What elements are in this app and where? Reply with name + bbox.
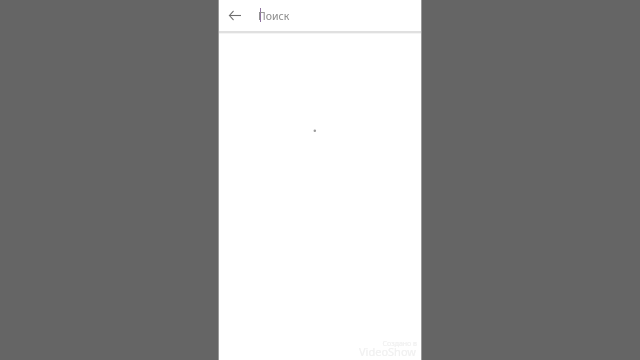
staticText: Поиск <box>258 9 290 23</box>
staticText: Создано в <box>348 339 417 349</box>
staticText: VideoShow <box>338 344 416 359</box>
button[interactable]: Поиск <box>249 0 421 31</box>
button[interactable]: Back <box>219 0 249 31</box>
